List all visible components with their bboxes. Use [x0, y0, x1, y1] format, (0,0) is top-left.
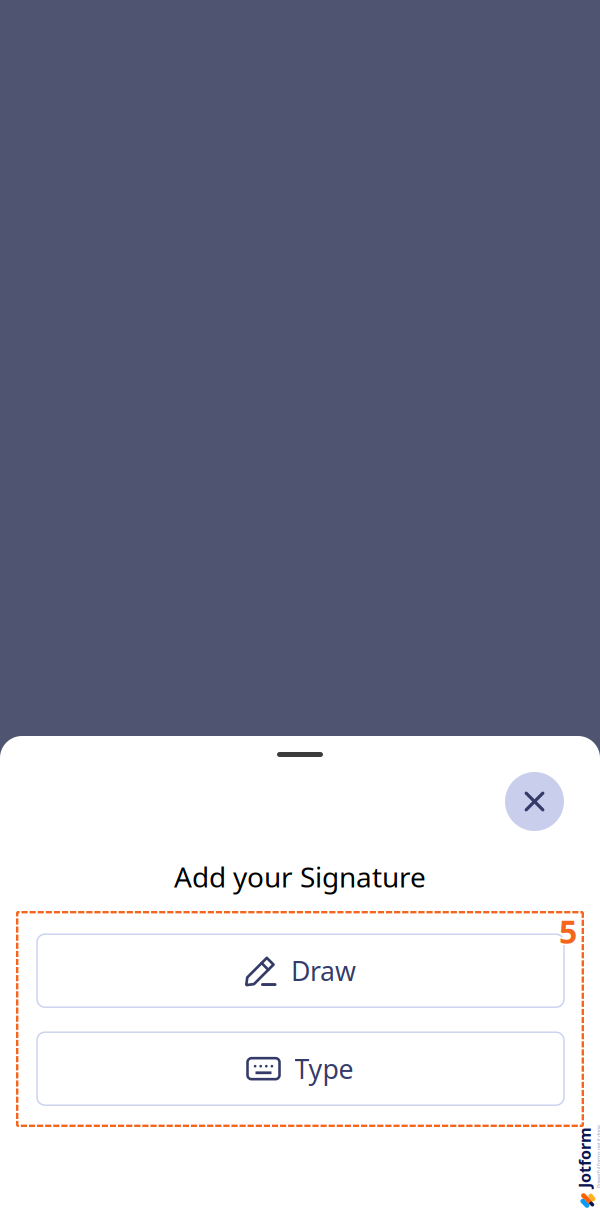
button[interactable]: Close [505, 772, 564, 831]
staticText: Jotform [561, 1147, 600, 1168]
staticText: 5 [557, 910, 575, 952]
staticText: Add your Signature [174, 858, 426, 895]
staticText: 5 [559, 908, 577, 951]
staticText: 5 [561, 910, 579, 952]
button[interactable]: Draw signature [37, 934, 564, 1007]
staticText: Draw [291, 953, 356, 988]
staticText: Powerful forms get it done [561, 1168, 600, 1175]
staticText: Type [294, 1051, 353, 1086]
button[interactable]: Type signature [37, 1032, 564, 1105]
staticText: 5 [559, 910, 577, 952]
staticText: 5 [559, 912, 577, 954]
